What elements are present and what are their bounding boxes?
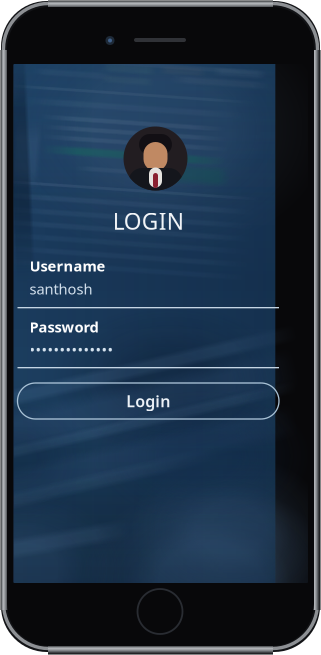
staticText: santhosh bbox=[29, 279, 92, 298]
staticText: LOGIN bbox=[113, 206, 184, 236]
button[interactable]: Login bbox=[17, 383, 279, 419]
staticText: Username bbox=[29, 256, 105, 275]
staticText: •••••••••••••• bbox=[29, 340, 113, 359]
staticText: Password bbox=[29, 317, 98, 336]
staticText: Login bbox=[126, 390, 170, 412]
